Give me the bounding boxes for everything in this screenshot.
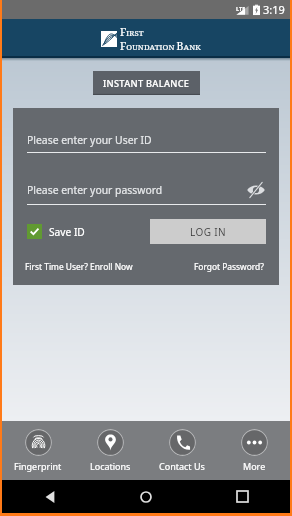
button[interactable]: First Time User? Enroll Now [25,261,133,272]
staticText: FOUNDATION BANK [120,39,201,53]
staticText: Please enter your password [27,183,246,197]
button[interactable]: Fingerprint [2,421,74,480]
button[interactable]: Locations [74,421,146,480]
button[interactable]: Recents [194,480,290,513]
staticText: INSTANT BALANCE [103,77,190,90]
staticText: Fingerprint [14,460,62,472]
button[interactable]: Forgot Password? [194,261,264,272]
button[interactable]: Home [98,480,194,513]
button[interactable]: LOG IN [150,219,266,244]
staticText: More [243,460,266,472]
staticText: Locations [90,460,131,472]
button[interactable]: Back [2,480,98,513]
button[interactable]: Show password [246,180,266,200]
staticText: LOG IN [190,225,227,239]
button[interactable]: INSTANT BALANCE [93,71,200,95]
staticText: Save ID [49,225,85,239]
staticText: FIRST [120,25,144,39]
staticText: Please enter your User ID [27,133,152,147]
staticText: LTE [236,5,246,12]
button[interactable]: Contact Us [146,421,218,480]
button[interactable]: Save ID [27,224,85,239]
staticText: 3:19 [263,2,285,17]
staticText: Contact Us [159,460,205,472]
button[interactable]: More [218,421,290,480]
